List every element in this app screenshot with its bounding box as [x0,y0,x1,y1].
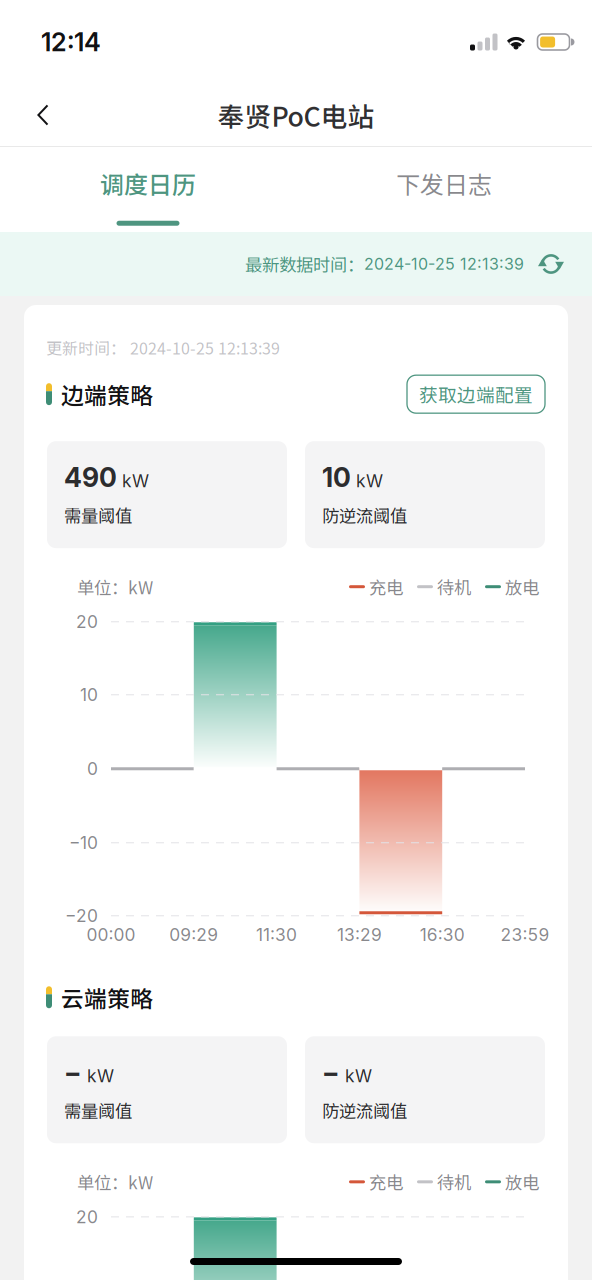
staticText: 下发日志 [396,166,492,201]
staticText: 490 [64,461,117,493]
staticText: 待机 [433,574,471,599]
staticText: 放电 [501,574,539,599]
staticText: 23:59 [500,924,549,945]
staticText: 16:30 [420,924,465,945]
staticText: 放电 [501,1169,539,1194]
button[interactable]: Refresh [524,238,578,290]
staticText: 单位：kW [77,574,153,599]
staticText: 10 [80,684,98,705]
staticText: 20 [76,611,98,632]
staticText: 单位：kW [77,1169,153,1194]
staticText: 12:14 [41,27,101,57]
staticText: − [64,1056,82,1089]
staticText: 充电 [365,574,403,599]
staticText: − [322,1056,340,1089]
staticText: kW [345,1066,372,1087]
staticText: 调度日历 [100,166,196,201]
staticText: kW [122,470,149,491]
staticText: 20 [76,1206,98,1227]
staticText: 10 [322,461,351,493]
staticText: 防逆流阈值 [322,502,407,527]
staticText: 充电 [365,1169,403,1194]
staticText: 更新时间： 2024-10-25 12:13:39 [46,336,280,359]
staticText: −20 [65,905,98,926]
staticText: 00:00 [86,924,135,945]
button[interactable]: Back [15,88,71,142]
staticText: 2024-10-25 12:13:39 [364,254,524,274]
staticText: 奉贤PoC电站 [217,96,374,134]
staticText: 边端策略 [61,378,153,411]
staticText: kW [87,1066,114,1087]
button[interactable]: 调度日历 [0,147,296,232]
staticText: −10 [69,832,98,853]
staticText: 需量阈值 [64,502,132,527]
staticText: 待机 [433,1169,471,1194]
button[interactable]: 下发日志 [296,147,592,232]
staticText: 云端策略 [61,981,153,1014]
staticText: 需量阈值 [64,1097,132,1123]
staticText: kW [356,470,383,491]
staticText: 获取边端配置 [419,381,533,408]
staticText: 09:29 [169,924,218,945]
staticText: 11:30 [256,924,297,945]
staticText: 防逆流阈值 [322,1097,407,1123]
staticText: 0 [87,758,98,779]
staticText: 最新数据时间： [245,251,364,277]
button[interactable]: 获取边端配置 [407,375,545,413]
staticText: 13:29 [337,924,382,945]
